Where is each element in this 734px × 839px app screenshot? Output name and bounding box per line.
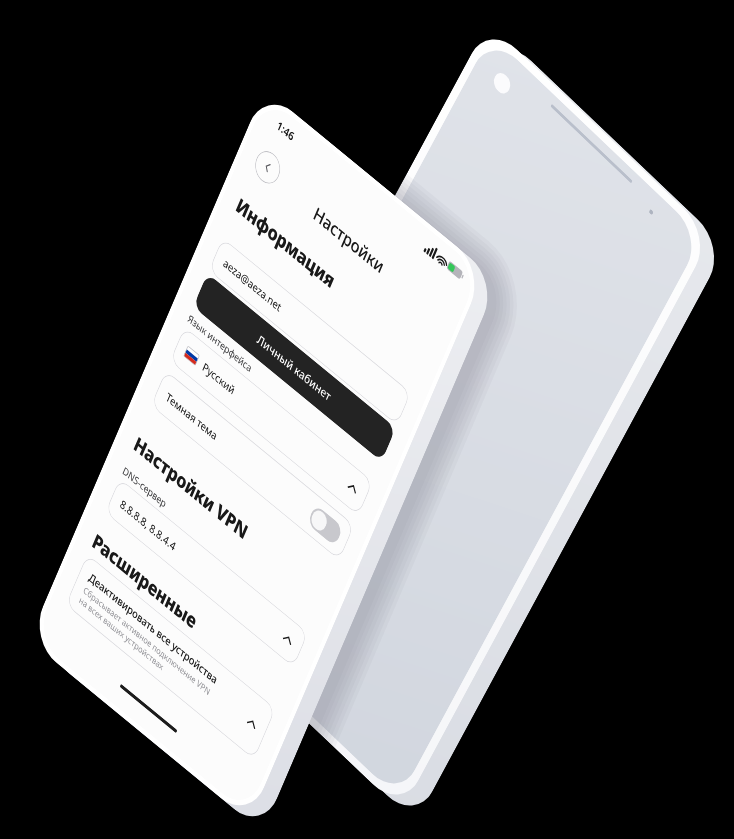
button[interactable]: Темная тема [151,370,354,560]
button[interactable]: Back [251,145,285,190]
staticText: Деактивировать все устройства [87,569,220,687]
staticText: Сбрасывает активное подключение VPN на в… [77,584,212,708]
staticText: 1:46 [275,117,297,144]
staticText: Язык интерфейса [186,311,254,375]
staticText: Расширенные [88,527,201,635]
staticText: 8.8.8.8, 8.8.4.4 [118,496,178,554]
button[interactable]: aeza@aeza.net [208,238,411,425]
staticText: Личный кабинет [255,330,334,405]
staticText: aeza@aeza.net [221,255,284,315]
button[interactable]: Русский [170,326,373,516]
staticText: Настройки VPN [130,430,252,546]
staticText: Информация [232,191,339,294]
staticText: DNS-сервер [121,463,168,510]
staticText: Темная тема [164,389,220,443]
staticText: Настройки [310,201,388,279]
button[interactable] [307,504,344,547]
button[interactable]: Деактивировать все устройства [65,554,276,760]
staticText: Русский [201,359,237,397]
button[interactable]: Личный кабинет [193,273,396,462]
button[interactable]: 8.8.8.8, 8.8.4.4 [105,478,308,667]
